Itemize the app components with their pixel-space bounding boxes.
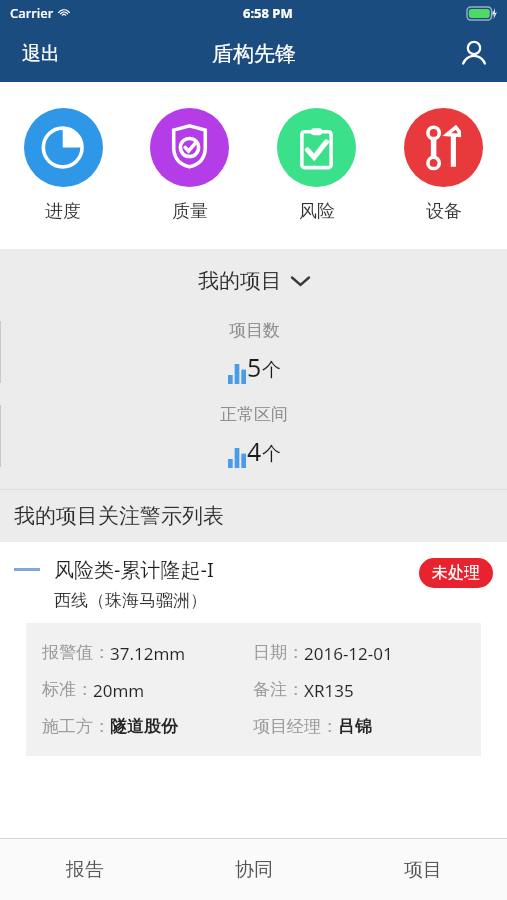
staticText: 未处理 — [432, 563, 480, 583]
button[interactable]: 退出 — [0, 30, 82, 78]
staticText: 设备 — [426, 200, 462, 223]
button[interactable]: 风险 — [253, 82, 380, 249]
staticText: 6:58 PM — [243, 4, 293, 22]
staticText: 西线（珠海马骝洲） — [54, 590, 207, 611]
button[interactable]: 项目 — [338, 839, 507, 900]
staticText: 项目数 — [229, 320, 280, 341]
staticText: 施工方： — [42, 716, 110, 737]
button[interactable]: 正常区间 — [1, 397, 507, 475]
button[interactable]: 我的项目 — [0, 249, 507, 313]
staticText: 37.12mm — [110, 642, 186, 665]
staticText: 个 — [262, 358, 281, 382]
button[interactable]: 协同 — [169, 839, 338, 900]
staticText: 盾构先锋 — [212, 41, 296, 67]
button[interactable]: 未处理 — [419, 558, 493, 588]
staticText: 项目 — [404, 858, 442, 882]
staticText: 4 — [247, 434, 262, 468]
button[interactable]: 风险类-累计隆起-I — [0, 542, 507, 770]
staticText: 吕锦 — [338, 716, 372, 737]
staticText: 隧道股份 — [110, 716, 178, 737]
staticText: 质量 — [172, 200, 208, 223]
staticText: Carrier — [10, 4, 54, 22]
button[interactable]: 进度 — [0, 82, 126, 249]
staticText: 20mm — [93, 679, 145, 702]
staticText: 我的项目 — [198, 268, 282, 294]
staticText: 日期： — [253, 642, 304, 663]
staticText: XR135 — [304, 679, 354, 702]
button[interactable]: Profile — [441, 29, 507, 79]
button[interactable]: 项目数 — [1, 313, 507, 391]
staticText: 备注： — [253, 679, 304, 700]
staticText: 标准： — [42, 679, 93, 700]
staticText: 风险类-累计隆起-I — [54, 556, 214, 583]
staticText: 个 — [262, 442, 281, 466]
staticText: 5 — [247, 350, 262, 384]
button[interactable]: 设备 — [380, 82, 507, 249]
staticText: 正常区间 — [220, 404, 288, 425]
button[interactable]: 报告 — [0, 839, 169, 900]
staticText: 风险 — [299, 200, 335, 223]
staticText: 报告 — [66, 858, 104, 882]
staticText: 项目经理： — [253, 716, 338, 737]
staticText: 我的项目关注警示列表 — [14, 503, 224, 529]
staticText: 退出 — [22, 42, 60, 66]
staticText: 报警值： — [42, 642, 110, 663]
staticText: 进度 — [45, 200, 81, 223]
staticText: 2016-12-01 — [304, 642, 393, 665]
button[interactable]: 质量 — [126, 82, 253, 249]
staticText: 协同 — [235, 858, 273, 882]
